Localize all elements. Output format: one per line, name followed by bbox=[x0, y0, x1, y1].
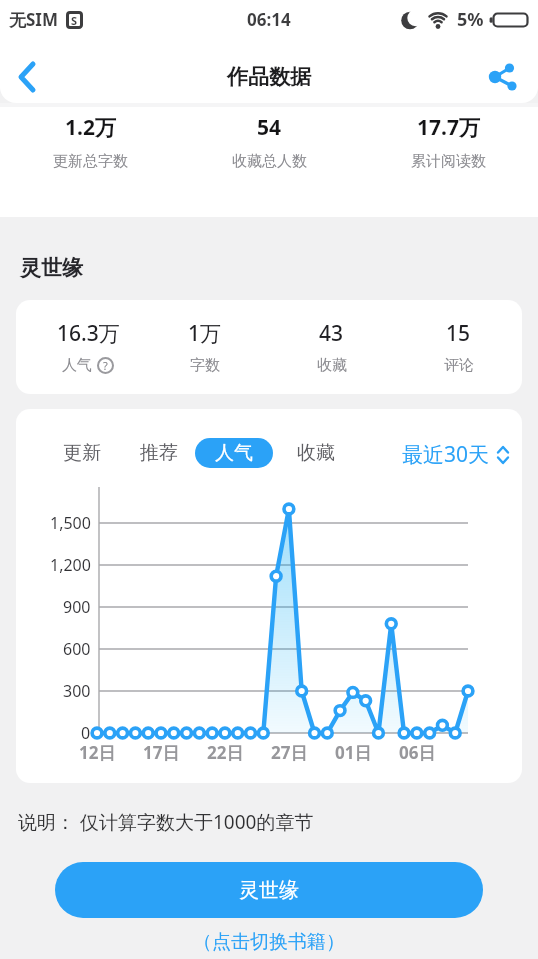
staticText: 900 bbox=[63, 596, 91, 618]
button[interactable]: 推荐 bbox=[140, 441, 178, 465]
staticText: 灵世缘 bbox=[239, 878, 299, 903]
staticText: 更新总字数 bbox=[53, 152, 128, 171]
staticText: 收藏总人数 bbox=[232, 152, 307, 171]
staticText: 27日 bbox=[271, 741, 308, 764]
staticText: 人气 bbox=[62, 356, 92, 375]
staticText: 灵世缘 bbox=[20, 255, 83, 281]
staticText: S bbox=[71, 13, 78, 28]
staticText: 1,200 bbox=[50, 554, 91, 576]
staticText: 01日 bbox=[335, 741, 372, 764]
staticText: 收藏 bbox=[317, 356, 347, 375]
button[interactable] bbox=[8, 57, 48, 97]
staticText: 22日 bbox=[207, 741, 244, 764]
staticText: 1.2万 bbox=[65, 113, 116, 142]
staticText: 最近30天 bbox=[402, 440, 490, 469]
staticText: 人气 bbox=[215, 441, 253, 465]
staticText: 16.3万 bbox=[57, 319, 120, 348]
staticText: 累计阅读数 bbox=[411, 152, 486, 171]
staticText: 54 bbox=[257, 113, 282, 142]
staticText: 评论 bbox=[444, 356, 474, 375]
staticText: 600 bbox=[63, 638, 91, 660]
staticText: 无SIM bbox=[9, 8, 59, 31]
button[interactable]: 最近30天 bbox=[402, 440, 510, 469]
staticText: 说明： 仅计算字数大于1000的章节 bbox=[18, 809, 314, 835]
button[interactable]: （点击切换书籍） bbox=[189, 926, 349, 958]
staticText: 0 bbox=[81, 722, 91, 744]
staticText: 17日 bbox=[143, 741, 180, 764]
staticText: 17.7万 bbox=[417, 113, 480, 142]
button[interactable]: 灵世缘 bbox=[55, 862, 483, 918]
staticText: ? bbox=[103, 358, 108, 373]
staticText: 作品数据 bbox=[227, 64, 311, 90]
staticText: 字数 bbox=[190, 356, 220, 375]
staticText: （点击切换书籍） bbox=[193, 930, 345, 954]
staticText: 1,500 bbox=[50, 512, 91, 534]
staticText: 12日 bbox=[79, 741, 116, 764]
staticText: 06日 bbox=[399, 741, 436, 764]
staticText: 5% bbox=[457, 7, 484, 32]
button[interactable]: 收藏 bbox=[297, 441, 335, 465]
button[interactable]: 人气 bbox=[195, 438, 273, 468]
staticText: 1万 bbox=[188, 319, 222, 348]
staticText: 300 bbox=[63, 680, 91, 702]
button[interactable] bbox=[482, 57, 522, 97]
staticText: 06:14 bbox=[247, 8, 291, 31]
button[interactable]: 更新 bbox=[63, 441, 101, 465]
staticText: 15 bbox=[446, 319, 471, 348]
staticText: 43 bbox=[319, 319, 344, 348]
